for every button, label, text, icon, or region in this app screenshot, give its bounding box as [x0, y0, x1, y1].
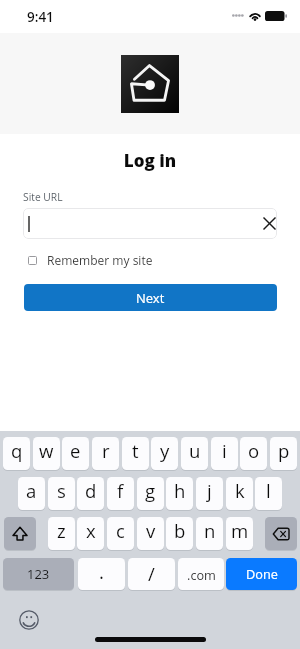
staticText: 9:41	[27, 8, 54, 26]
button[interactable]: c	[107, 517, 134, 550]
button[interactable]: t	[122, 437, 149, 470]
staticText: g	[145, 478, 156, 503]
button[interactable]: Clear text	[257, 211, 277, 235]
staticText: k	[235, 478, 245, 503]
button[interactable]: l	[255, 477, 282, 510]
button[interactable]: 123	[3, 558, 74, 590]
button[interactable]: r	[92, 437, 119, 470]
staticText: Next	[136, 289, 165, 307]
staticText: u	[189, 438, 201, 463]
staticText: r	[102, 438, 110, 463]
button[interactable]: Emoji keyboard	[17, 608, 40, 631]
button[interactable]: .	[78, 558, 125, 590]
staticText: Remember my site	[47, 252, 153, 268]
staticText: d	[85, 478, 97, 503]
button[interactable]: f	[107, 477, 134, 510]
staticText: h	[174, 478, 186, 503]
button[interactable]: Shift	[4, 517, 36, 550]
staticText: i	[222, 438, 227, 463]
button[interactable]: Clear text	[23, 208, 277, 239]
button[interactable]: b	[166, 517, 193, 550]
button[interactable]: a	[18, 477, 45, 510]
button[interactable]: y	[151, 437, 178, 470]
staticText: y	[160, 438, 170, 463]
staticText: x	[86, 518, 96, 543]
staticText: w	[39, 438, 54, 463]
staticText: .	[99, 559, 104, 584]
button[interactable]: e	[62, 437, 89, 470]
button[interactable]: Next	[24, 284, 277, 311]
button[interactable]: d	[77, 477, 104, 510]
staticText: .com	[187, 566, 216, 583]
staticText: c	[116, 518, 125, 543]
staticText: p	[278, 438, 290, 463]
staticText: s	[57, 478, 66, 503]
staticText: l	[266, 478, 271, 503]
button[interactable]: i	[211, 437, 238, 470]
staticText: e	[70, 438, 81, 463]
staticText: m	[231, 518, 249, 543]
staticText: q	[11, 438, 23, 463]
button[interactable]: Done	[226, 558, 297, 590]
button[interactable]: u	[181, 437, 208, 470]
button[interactable]: j	[196, 477, 223, 510]
button[interactable]: m	[226, 517, 253, 550]
staticText: j	[207, 478, 212, 503]
button[interactable]: q	[3, 437, 30, 470]
button[interactable]: n	[196, 517, 223, 550]
button[interactable]: Remember my site	[23, 251, 183, 269]
button[interactable]: o	[240, 437, 267, 470]
staticText: Site URL	[23, 190, 63, 204]
staticText: z	[57, 518, 66, 543]
staticText: /	[148, 561, 155, 586]
button[interactable]: w	[33, 437, 60, 470]
button[interactable]: /	[128, 558, 175, 590]
staticText: 123	[27, 565, 50, 583]
staticText: v	[146, 518, 156, 543]
button[interactable]: s	[48, 477, 75, 510]
staticText: n	[204, 518, 216, 543]
staticText: b	[174, 518, 186, 543]
button[interactable]: Backspace	[265, 517, 297, 550]
staticText: f	[117, 478, 124, 503]
button[interactable]: k	[226, 477, 253, 510]
button[interactable]: p	[270, 437, 297, 470]
button[interactable]: .com	[178, 558, 224, 590]
button[interactable]: v	[137, 517, 164, 550]
staticText: t	[132, 438, 139, 463]
button[interactable]: h	[166, 477, 193, 510]
staticText: o	[248, 438, 260, 463]
button[interactable]: g	[137, 477, 164, 510]
staticText: a	[26, 478, 37, 503]
button[interactable]: x	[77, 517, 104, 550]
staticText: Done	[246, 565, 278, 582]
button[interactable]: z	[48, 517, 75, 550]
staticText: Log in	[0, 149, 300, 172]
